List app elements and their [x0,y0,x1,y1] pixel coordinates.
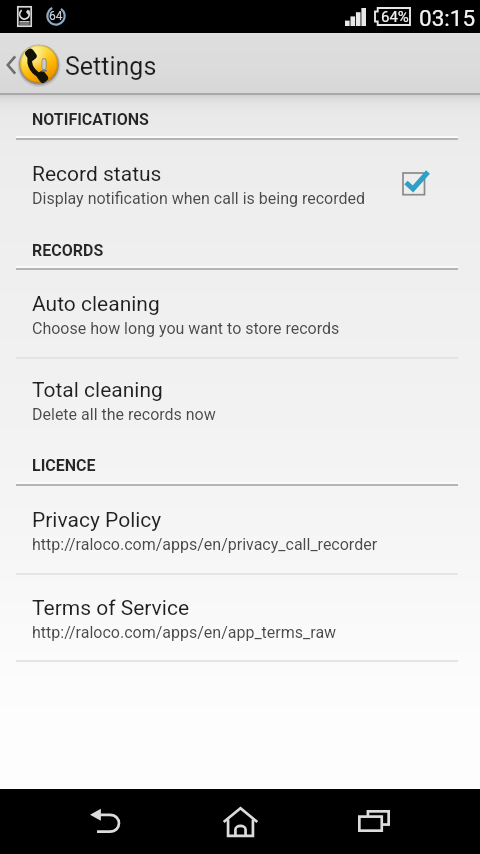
staticText: 64% [381,8,409,26]
staticText: 03:15 [419,5,476,31]
staticText: Delete all the records now [32,405,216,424]
button[interactable]: Recent apps [320,789,480,854]
staticText: Choose how long you want to store record… [32,319,340,338]
button[interactable]: Auto cleaning [0,278,480,350]
staticText: http://raloco.com/apps/en/privacy_call_r… [32,535,378,554]
staticText: Auto cleaning [32,292,160,317]
button[interactable]: Home [160,789,320,854]
button[interactable]: Privacy Policy [0,494,480,566]
button[interactable]: Record status checkbox [384,156,440,212]
button[interactable]: Total cleaning [0,364,480,436]
staticText: LICENCE [32,456,96,475]
staticText: NOTIFICATIONS [32,110,149,129]
staticText: Record status [32,162,162,187]
button[interactable]: Terms of Service [0,582,480,654]
button[interactable]: Record status [0,148,480,220]
staticText: Total cleaning [32,378,163,403]
button[interactable]: Back [0,789,160,854]
staticText: Privacy Policy [32,508,162,533]
staticText: Settings [65,52,157,81]
staticText: 64 [49,9,63,23]
staticText: RECORDS [32,241,104,260]
button[interactable]: Navigate up [0,33,480,93]
staticText: http://raloco.com/apps/en/app_terms_raw [32,623,337,642]
staticText: Terms of Service [32,596,190,621]
staticText: Display notification when call is being … [32,189,366,208]
